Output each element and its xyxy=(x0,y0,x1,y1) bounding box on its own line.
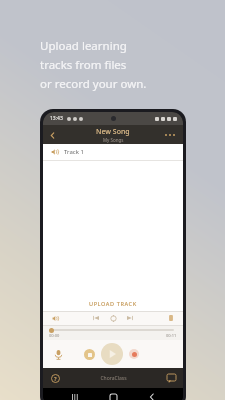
staticText: tracks from files xyxy=(40,57,127,73)
staticText: or record your own. xyxy=(40,76,147,92)
button[interactable]: Track 1 xyxy=(43,144,183,160)
button[interactable]: Volume xyxy=(49,312,61,324)
button[interactable]: Help xyxy=(48,371,62,385)
button[interactable]: Home xyxy=(106,390,120,400)
button[interactable]: Record xyxy=(129,349,139,359)
button[interactable]: Chat xyxy=(164,371,178,385)
button[interactable]: UPLOAD TRACK xyxy=(43,296,183,311)
staticText: ChoraClass xyxy=(100,375,127,382)
staticText: 00:00 xyxy=(49,333,60,338)
button[interactable]: Back xyxy=(145,390,159,400)
button[interactable]: Back xyxy=(43,126,61,144)
staticText: ? xyxy=(54,375,57,382)
staticText: Upload learning xyxy=(40,38,127,54)
button[interactable]: More options xyxy=(163,128,177,142)
staticText: 00:11 xyxy=(166,333,177,338)
button[interactable]: Loop xyxy=(107,312,119,324)
button[interactable]: Play xyxy=(101,343,123,365)
staticText: My Songs xyxy=(103,137,124,143)
button[interactable] xyxy=(49,329,174,331)
button[interactable]: Delete xyxy=(165,312,177,324)
button[interactable]: Recents xyxy=(68,390,82,400)
button[interactable]: Skip to start xyxy=(90,312,102,324)
staticText: New Song xyxy=(96,127,130,137)
staticText: UPLOAD TRACK xyxy=(89,300,137,307)
staticText: 13:43 xyxy=(50,115,63,122)
button[interactable]: Skip to end xyxy=(124,312,136,324)
button[interactable]: Stop xyxy=(84,349,95,360)
staticText: Track 1 xyxy=(64,148,84,156)
button[interactable]: Microphone xyxy=(50,346,66,362)
